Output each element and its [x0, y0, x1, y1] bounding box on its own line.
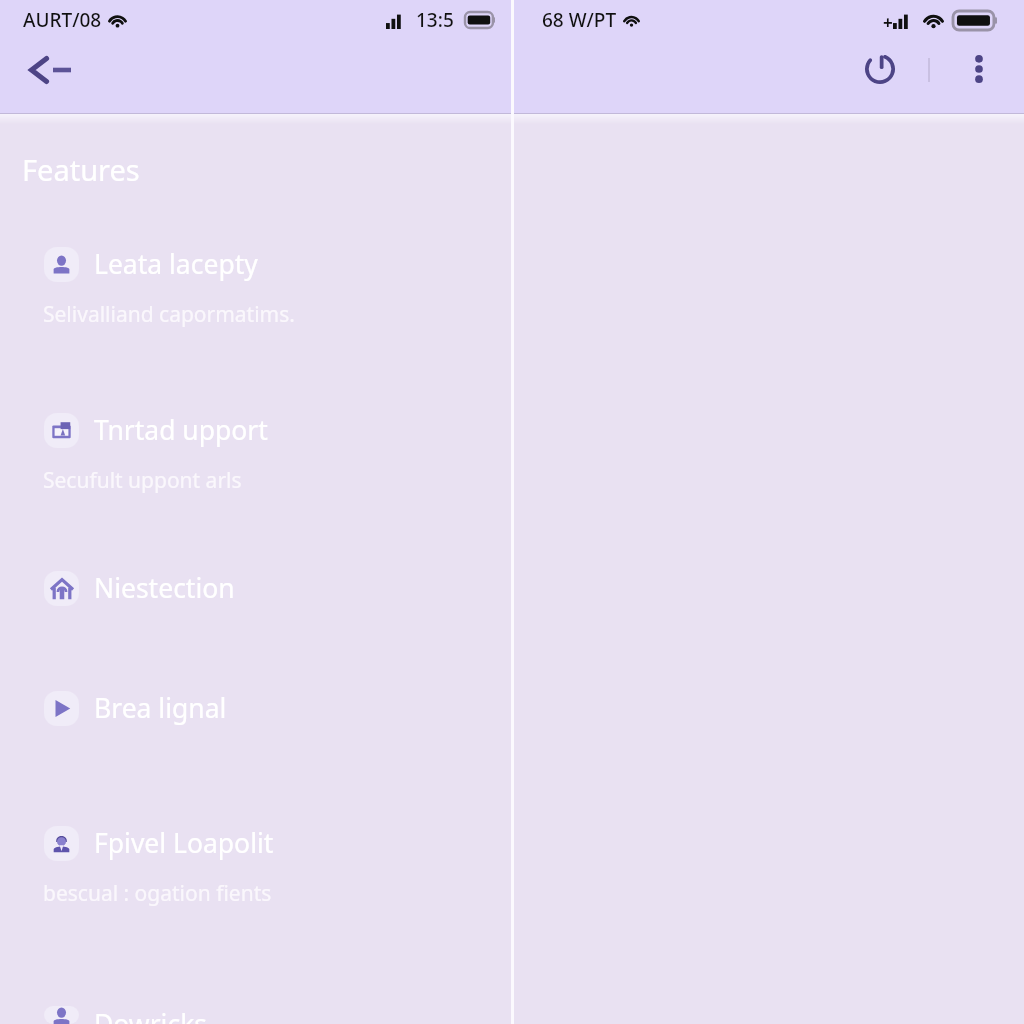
staticText: Brea lignal — [94, 690, 227, 726]
button[interactable]: Fpivel Loapolit — [0, 825, 511, 908]
staticText: Fpivel Loapolit — [94, 825, 274, 861]
button[interactable]: Back — [14, 42, 86, 98]
button[interactable]: Dowricks — [0, 1006, 511, 1024]
staticText: AURT/08 — [23, 7, 102, 33]
staticText: Features — [22, 150, 140, 189]
staticText: + — [883, 11, 893, 34]
staticText: Tnrtad upport — [94, 412, 268, 448]
staticText: Selivalliand capormatims. — [43, 300, 295, 329]
staticText: Secufult uppont arls — [43, 466, 242, 495]
staticText: 68 W/PT — [542, 7, 617, 33]
button[interactable]: Niestection — [0, 570, 511, 606]
button[interactable]: Tnrtad upport — [0, 412, 511, 495]
staticText: Leata lacepty — [94, 246, 258, 282]
button[interactable]: Leata lacepty — [0, 246, 511, 329]
staticText: bescual : ogation fients — [43, 879, 272, 908]
button[interactable]: Refresh — [852, 41, 908, 97]
staticText: Niestection — [94, 570, 235, 606]
staticText: 13:5 — [416, 7, 454, 33]
staticText: Dowricks — [94, 1006, 208, 1024]
button[interactable]: More options — [951, 41, 1007, 97]
button[interactable]: Brea lignal — [0, 690, 511, 726]
